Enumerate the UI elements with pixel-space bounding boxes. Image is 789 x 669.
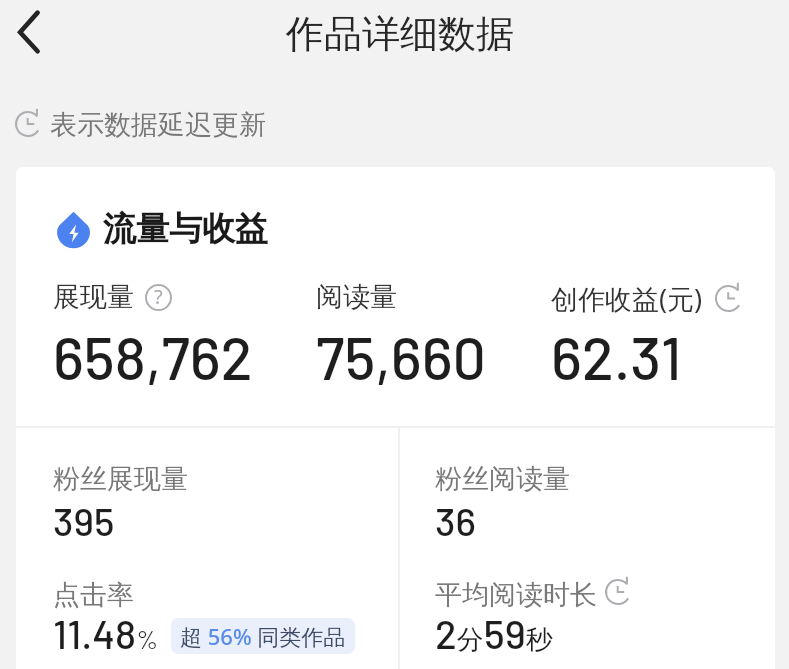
button[interactable]: 超 56% 同类作品 [180,621,346,651]
staticText: 75,660 [316,321,486,392]
staticText: 395 [53,497,115,544]
staticText: 粉丝展现量 [53,462,188,496]
staticText: 展现量 [53,280,134,314]
staticText: 超 56% 同类作品 [180,621,346,651]
staticText: 11.48% [53,609,159,657]
staticText: 表示数据延迟更新 [50,108,266,142]
staticText: 阅读量 [316,280,397,314]
staticText: 作品详细数据 [286,10,514,58]
staticText: 点击率 [53,578,134,612]
staticText: ? [154,283,163,310]
staticText: 创作收益(元) [551,280,703,317]
staticText: 62.31 [551,321,682,392]
staticText: 粉丝阅读量 [435,462,570,496]
staticText: 流量与收益 [103,208,268,250]
staticText: 36 [435,497,476,544]
staticText: 平均阅读时长 [435,578,597,612]
button[interactable]: Back [0,0,62,64]
staticText: 2分59秒 [435,609,553,657]
staticText: 658,762 [53,321,253,392]
